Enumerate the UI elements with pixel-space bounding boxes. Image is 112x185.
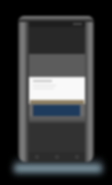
button[interactable]	[33, 105, 80, 116]
button[interactable]	[29, 27, 85, 54]
